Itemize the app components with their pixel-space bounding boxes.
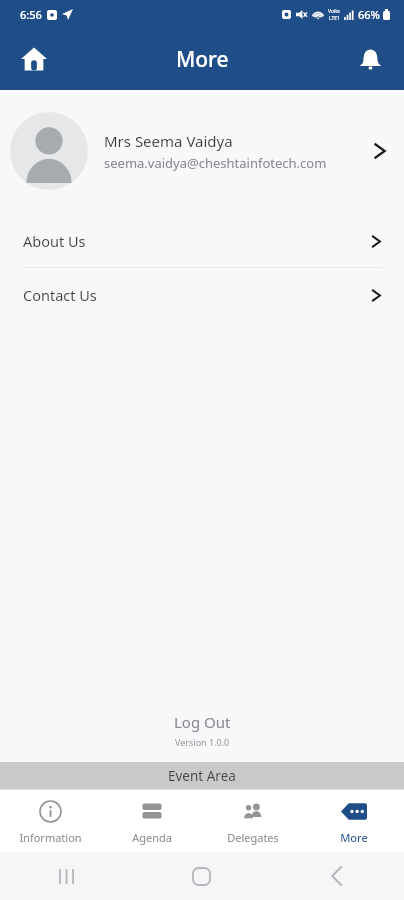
staticText: More: [340, 830, 368, 845]
staticText: Event Area: [168, 767, 236, 785]
button[interactable]: Home: [10, 35, 58, 83]
staticText: Volte: [328, 8, 340, 15]
button[interactable]: Notifications: [346, 35, 394, 83]
staticText: 6:56: [20, 7, 42, 22]
button[interactable]: About Us: [0, 214, 404, 267]
button[interactable]: Mrs Seema Vaidya: [0, 112, 404, 190]
staticText: Log Out: [174, 712, 231, 732]
staticText: Contact Us: [23, 285, 362, 305]
staticText: Information: [19, 830, 82, 845]
staticText: LTE1: [329, 15, 340, 22]
staticText: About Us: [23, 231, 362, 251]
button[interactable]: More: [303, 790, 404, 852]
staticText: seema.vaidya@cheshtainfotech.com: [104, 154, 327, 172]
staticText: Agenda: [132, 830, 172, 845]
staticText: More: [176, 45, 229, 74]
button[interactable]: Back: [269, 852, 404, 900]
staticText: Mrs Seema Vaidya: [104, 131, 233, 151]
button[interactable]: Contact Us: [0, 268, 404, 321]
button[interactable]: Agenda: [101, 790, 202, 852]
button[interactable]: Delegates: [202, 790, 303, 852]
button[interactable]: Home: [134, 852, 269, 900]
staticText: Delegates: [227, 830, 279, 845]
button[interactable]: Recent apps: [0, 852, 134, 900]
staticText: 66%: [358, 7, 380, 22]
staticText: Version 1.0.0: [175, 736, 230, 748]
button[interactable]: Log Out: [0, 704, 404, 762]
button[interactable]: Information: [0, 790, 101, 852]
